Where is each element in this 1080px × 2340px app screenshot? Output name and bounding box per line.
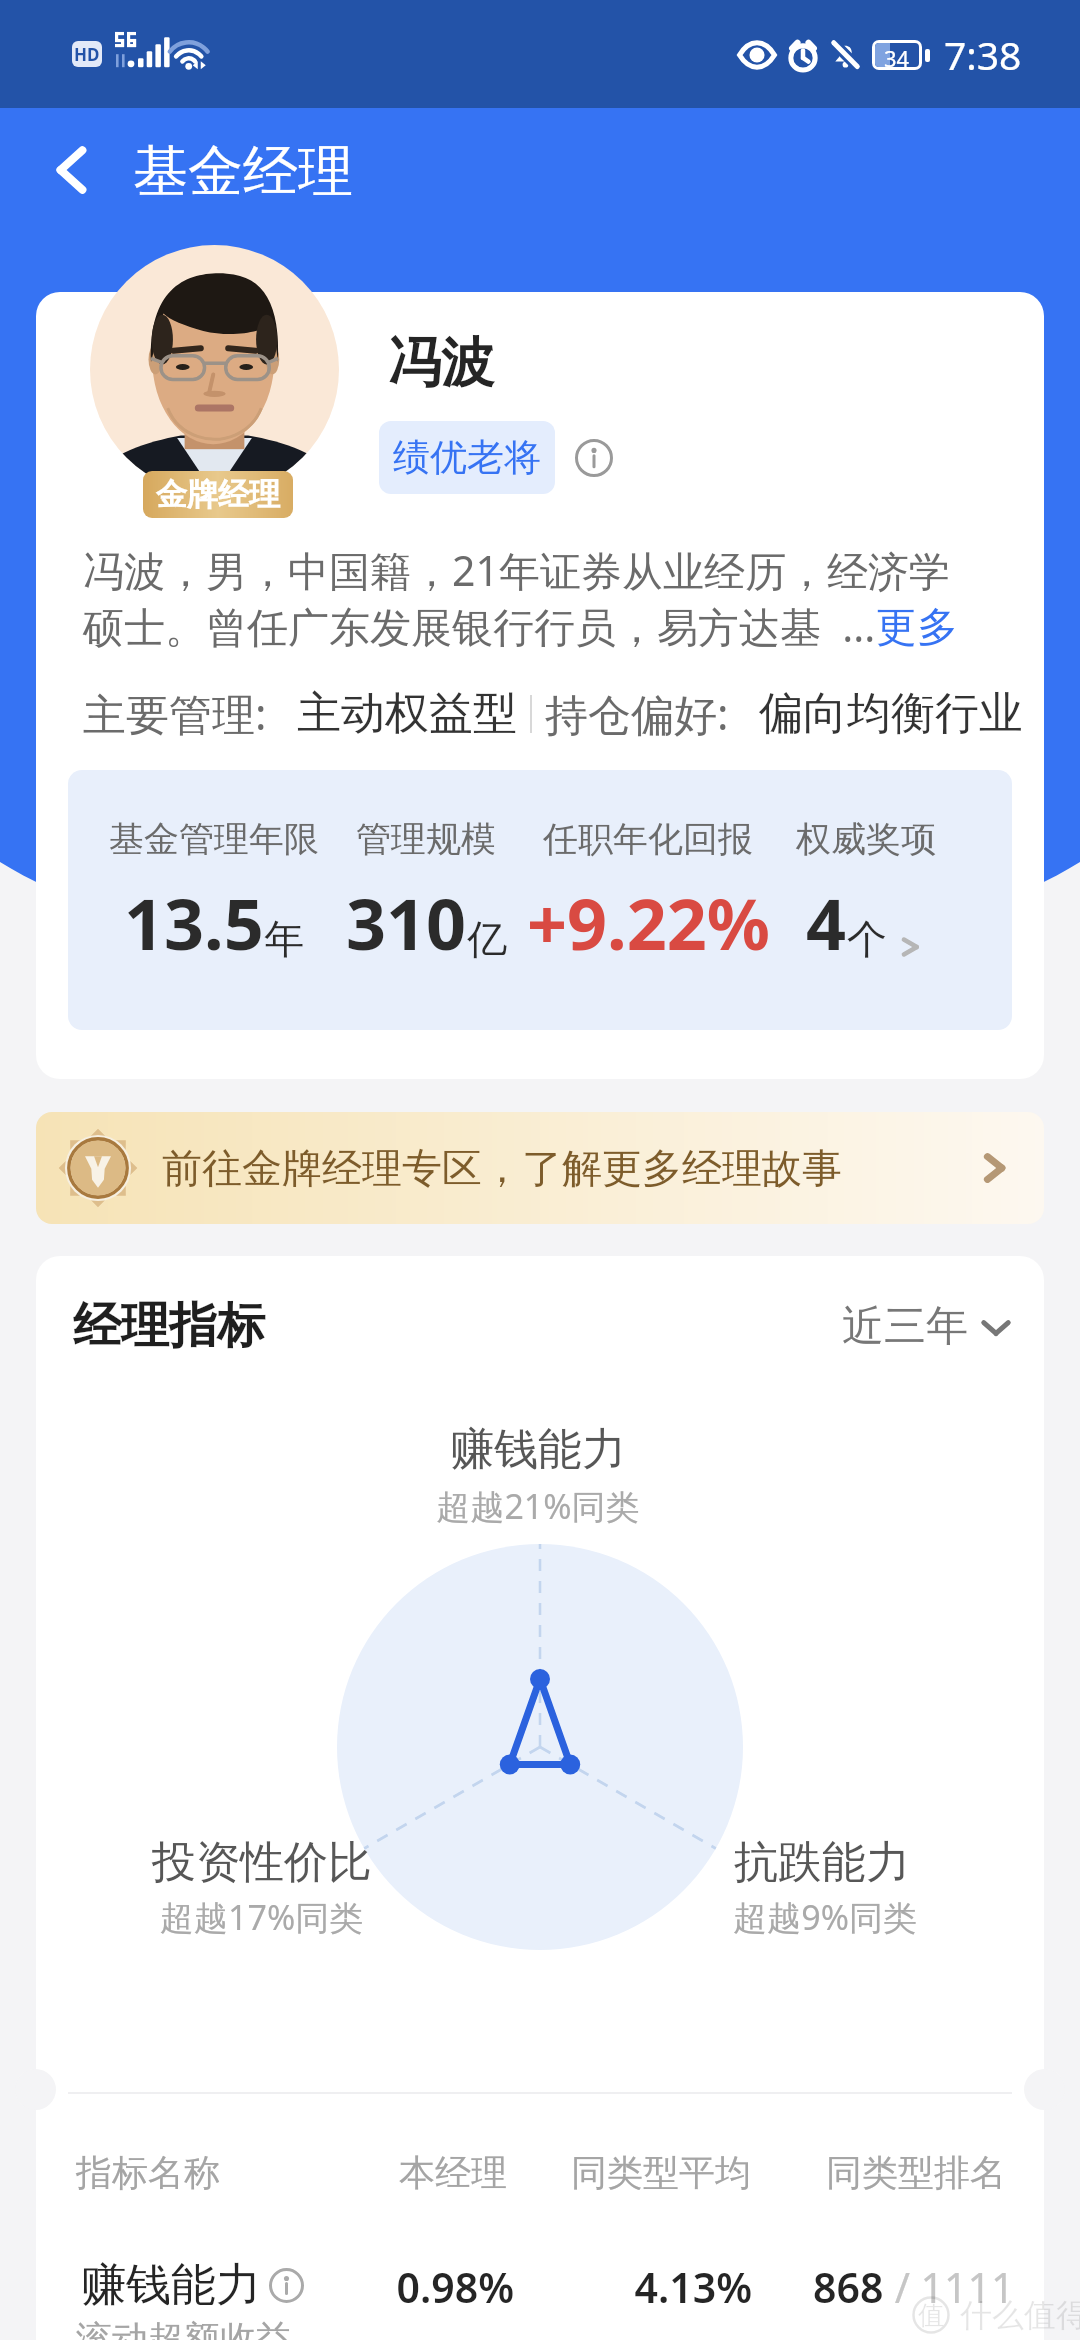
staticText: 金牌经理 [156,475,280,514]
staticText: 超越17%同类 [160,1894,364,1940]
button[interactable]: 基金管理年限 [68,770,1012,1030]
staticText: 冯波 [388,330,494,397]
staticText: +9.22% [527,875,770,970]
staticText: 主要管理: [83,684,267,743]
staticText: 前往金牌经理专区，了解更多经理故事 [162,1143,842,1193]
staticText: 赚钱能力 [81,2257,261,2314]
staticText: / 1111 [884,2259,1015,2315]
button[interactable]: Back [30,128,114,212]
staticText: 13.5 [124,875,264,970]
staticText: 超越21%同类 [338,1483,738,1529]
staticText: 7:38 [944,28,1022,81]
staticText: 4 [806,875,847,970]
staticText: 亿 [467,914,507,964]
staticText: 近三年 [842,1300,968,1353]
button[interactable]: 更多 [876,602,958,654]
staticText: 投资性价比 [152,1835,372,1890]
staticText: 抗跌能力 [510,1835,910,1890]
button[interactable]: 近三年 [842,1300,1014,1353]
staticText: 绩优老将 [393,434,541,481]
button[interactable]: 前往金牌经理专区，了解更多经理故事 [36,1112,1044,1224]
staticText: 4.13% [452,2259,752,2315]
button[interactable]: 绩优老将 [379,421,555,494]
staticText: 管理规模 [356,817,496,861]
button[interactable]: 赚钱能力 [36,2239,1044,2335]
staticText: 年 [264,914,304,964]
staticText: 同类型平均 [450,2150,751,2195]
staticText: 偏向均衡行业 [759,686,1023,741]
staticText: 任职年化回报 [543,817,753,861]
staticText: 310 [346,875,467,970]
staticText: 本经理 [207,2150,507,2195]
staticText: 滚动超额收益 [76,2316,292,2340]
staticText: HD [74,43,100,66]
staticText: 什么值得买 [960,2295,1080,2335]
staticText: 值 [918,2299,944,2332]
staticText: 持仓偏好: [545,684,729,743]
staticText: 硕士。曾任广东发展银行行员，易方达基 ... [83,598,876,654]
staticText: 指标名称 [76,2150,220,2195]
staticText: 同类型排名 [699,2150,1006,2195]
staticText: 34 [884,43,910,67]
staticText: 主动权益型 [297,686,517,741]
staticText: 基金管理年限 [109,817,319,861]
staticText: 基金经理 [133,137,353,206]
staticText: 经理指标 [73,1296,265,1356]
staticText: 868 [813,2259,884,2315]
staticText: 赚钱能力 [338,1422,738,1477]
button[interactable]: Info [572,436,616,480]
staticText: 0.98% [214,2259,514,2315]
staticText: 个 [847,914,887,964]
staticText: 冯波，男，中国籍，21年证券从业经历，经济学 [83,542,950,598]
staticText: 超越9%同类 [517,1894,917,1940]
staticText: 权威奖项 [796,817,936,861]
